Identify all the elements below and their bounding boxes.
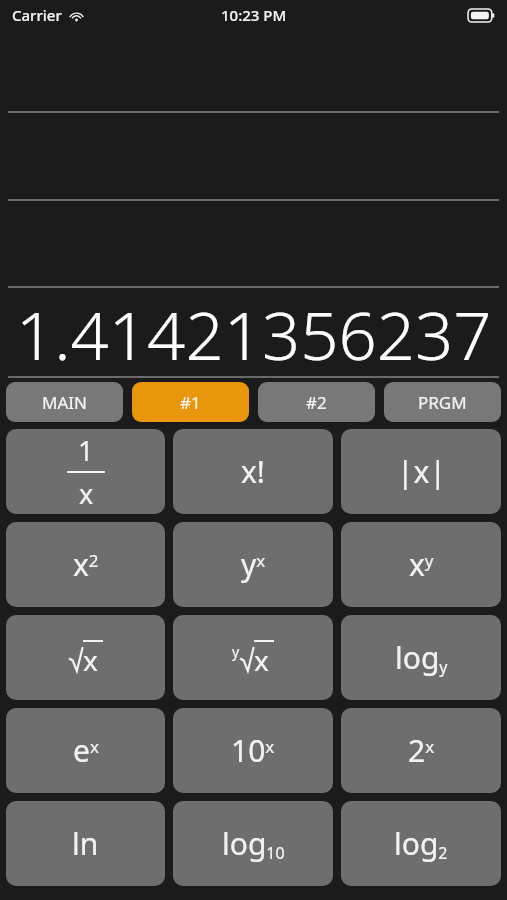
staticText: 2x xyxy=(408,730,435,771)
button[interactable]: x to the y xyxy=(341,522,501,607)
staticText: log10 xyxy=(222,823,285,864)
button[interactable]: ten to the x xyxy=(173,708,333,793)
staticText: #2 xyxy=(306,391,327,414)
staticText: ln xyxy=(72,823,99,864)
button[interactable]: e to the x xyxy=(6,708,165,793)
button[interactable]: log base two xyxy=(341,801,501,886)
staticText: logy xyxy=(395,637,448,678)
button[interactable]: log base ten xyxy=(173,801,333,886)
staticText: Carrier xyxy=(12,5,62,25)
staticText: ex xyxy=(73,730,99,771)
staticText: x xyxy=(83,641,98,679)
button[interactable]: #1 xyxy=(132,382,249,422)
staticText: xy xyxy=(409,544,434,585)
staticText: 10x xyxy=(231,730,275,771)
button[interactable]: PRGM xyxy=(384,382,501,422)
staticText: 1 xyxy=(78,432,94,469)
staticText: x2 xyxy=(73,544,99,585)
staticText: |x| xyxy=(397,451,446,492)
button[interactable]: two to the x xyxy=(341,708,501,793)
staticText: x xyxy=(254,641,269,679)
staticText: PRGM xyxy=(418,391,467,414)
button[interactable]: #2 xyxy=(258,382,375,422)
button[interactable]: log base y xyxy=(341,615,501,700)
staticText: #1 xyxy=(180,391,201,414)
staticText: x! xyxy=(241,451,265,492)
staticText: yx xyxy=(241,544,266,585)
button[interactable]: natural log xyxy=(6,801,165,886)
staticText: 1.41421356237 xyxy=(16,288,492,376)
button[interactable]: square root of x xyxy=(6,615,165,700)
button[interactable]: MAIN xyxy=(6,382,123,422)
button[interactable]: one over x xyxy=(6,429,165,514)
staticText: 10:23 PM xyxy=(221,5,287,25)
button[interactable]: x factorial xyxy=(173,429,333,514)
button[interactable]: y-th root of x xyxy=(173,615,333,700)
staticText: log2 xyxy=(394,823,448,864)
staticText: MAIN xyxy=(42,391,87,414)
staticText: x xyxy=(79,475,94,512)
button[interactable]: absolute value xyxy=(341,429,501,514)
staticText: y xyxy=(232,642,240,661)
button[interactable]: y to the x xyxy=(173,522,333,607)
button[interactable]: x squared xyxy=(6,522,165,607)
